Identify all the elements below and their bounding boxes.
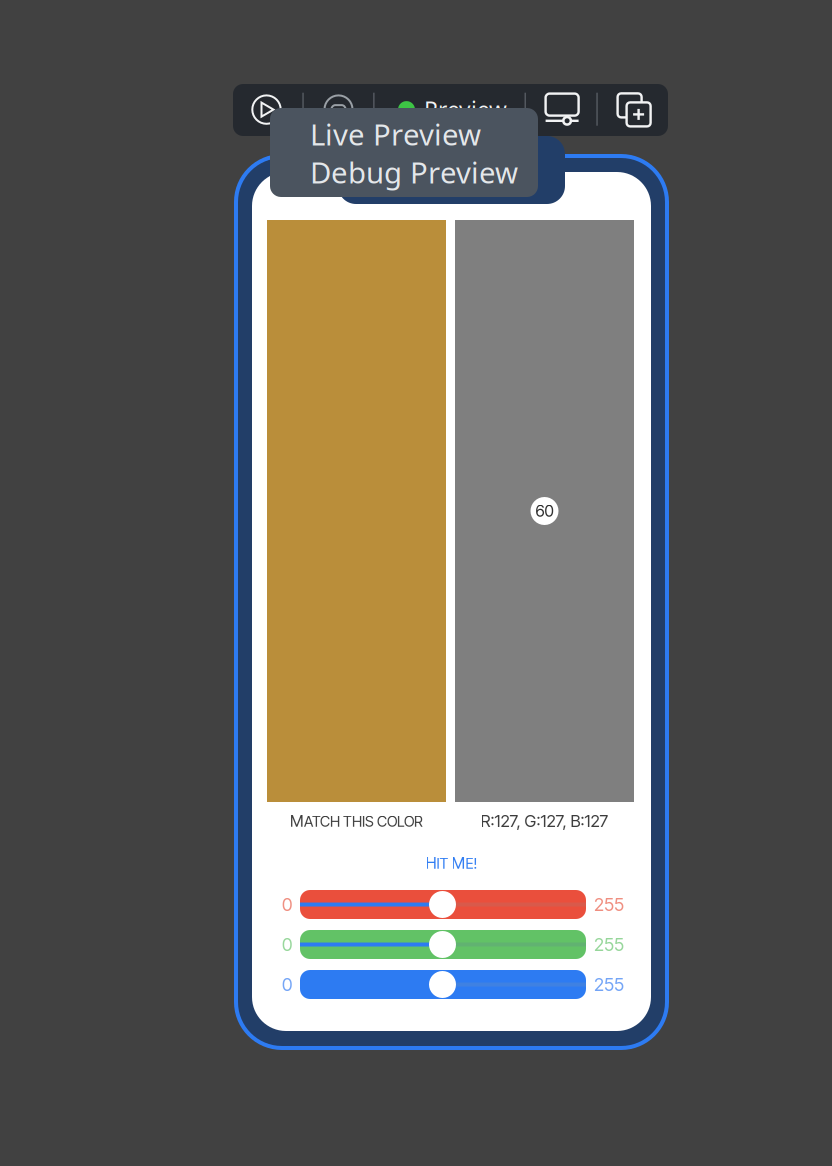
staticText: Preview [424,94,507,125]
button[interactable]: Inspect preview [323,94,354,126]
button[interactable]: Add preview [618,93,651,127]
staticText: 60 [535,501,553,521]
staticText: 0 [282,974,292,995]
staticText: 255 [594,934,624,955]
staticText: Debug Preview [310,152,518,191]
button[interactable]: Colour channel slider [300,930,586,959]
button[interactable]: Colour channel slider [300,890,586,919]
button[interactable]: HIT ME! [252,850,651,876]
button[interactable]: Live Preview [310,115,532,153]
button[interactable]: Preview device settings [546,94,579,128]
staticText: R:127, G:127, B:127 [480,811,608,831]
staticText: 0 [282,894,292,915]
staticText: HIT ME! [425,854,477,872]
staticText: Live Preview [310,114,481,153]
button[interactable]: Colour channel slider [300,970,586,999]
staticText: 255 [594,974,624,995]
button[interactable]: Debug Preview [310,153,532,191]
staticText: 255 [594,894,624,915]
staticText: MATCH THIS COLOR [290,812,423,830]
button[interactable]: Run preview [251,94,282,126]
button[interactable]: Preview [398,94,520,126]
staticText: 0 [282,934,292,955]
